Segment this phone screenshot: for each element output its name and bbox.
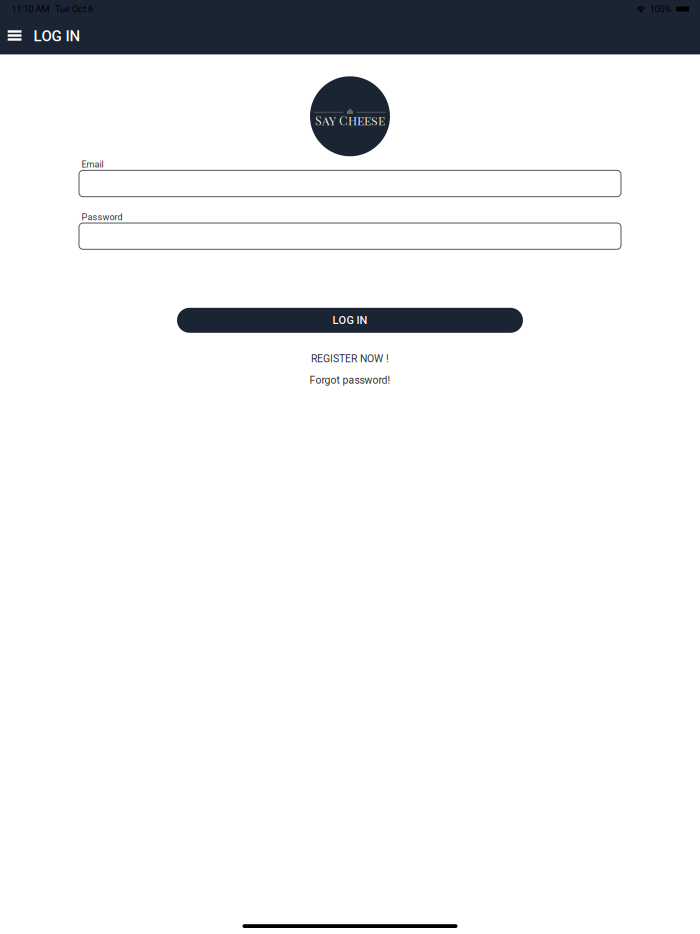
button[interactable]: Menu <box>0 20 26 52</box>
staticText: Say Cheese <box>315 112 385 128</box>
staticText: REGISTER NOW ! <box>311 353 389 365</box>
staticText: 100% <box>650 4 672 14</box>
staticText: Forgot password! <box>309 374 390 386</box>
button[interactable]: Forgot password! <box>287 370 413 391</box>
staticText: Email <box>81 159 103 170</box>
staticText: LOG IN <box>332 314 367 327</box>
staticText: Password <box>81 212 122 222</box>
staticText: Tue Oct 6 <box>55 4 93 14</box>
button[interactable]: LOG IN <box>177 308 523 333</box>
staticText: 11:10 AM <box>11 4 49 14</box>
button[interactable]: REGISTER NOW ! <box>287 348 413 369</box>
staticText: LOG IN <box>33 27 80 45</box>
